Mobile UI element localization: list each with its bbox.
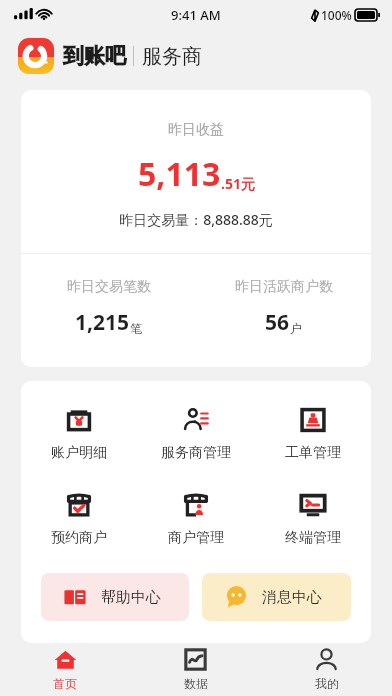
button[interactable]: 服务商管理 bbox=[137, 403, 254, 466]
staticText: 56 bbox=[265, 308, 290, 337]
staticText: 数据 bbox=[184, 676, 208, 691]
button[interactable]: 消息中心 bbox=[202, 573, 351, 621]
staticText: 昨日活跃商户数 bbox=[235, 278, 333, 296]
staticText: 账户明细 bbox=[51, 444, 107, 462]
button[interactable]: 终端管理 bbox=[254, 488, 371, 551]
button[interactable]: 工单管理 bbox=[254, 403, 371, 466]
staticText: 我的 bbox=[315, 676, 339, 691]
button[interactable]: 帮助中心 bbox=[41, 573, 189, 621]
button[interactable]: 数据 bbox=[130, 643, 261, 696]
staticText: 到账吧 bbox=[63, 43, 126, 69]
staticText: 消息中心 bbox=[262, 588, 322, 607]
staticText: 9:41 AM bbox=[171, 6, 221, 24]
staticText: 昨日交易笔数 bbox=[67, 278, 151, 296]
staticText: .51元 bbox=[221, 174, 255, 193]
staticText: 首页 bbox=[53, 676, 77, 691]
button[interactable]: 商户管理 bbox=[137, 488, 254, 551]
staticText: 昨日收益 bbox=[21, 121, 371, 139]
staticText: 笔 bbox=[130, 321, 142, 336]
staticText: 100% bbox=[321, 7, 352, 23]
staticText: 户 bbox=[290, 321, 302, 336]
staticText: 终端管理 bbox=[285, 529, 341, 547]
staticText: 工单管理 bbox=[285, 444, 341, 462]
button[interactable]: 首页 bbox=[0, 643, 130, 696]
staticText: 帮助中心 bbox=[101, 588, 161, 607]
staticText: 服务商 bbox=[142, 44, 202, 69]
button[interactable]: 我的 bbox=[261, 643, 392, 696]
staticText: 商户管理 bbox=[168, 529, 224, 547]
button[interactable]: 预约商户 bbox=[21, 488, 137, 551]
staticText: 服务商管理 bbox=[161, 444, 231, 462]
button[interactable]: 账户明细 bbox=[21, 403, 137, 466]
staticText: 预约商户 bbox=[51, 529, 107, 547]
staticText: 1,215 bbox=[75, 308, 130, 337]
staticText: 5,113 bbox=[138, 152, 221, 196]
staticText: 昨日交易量：8,888.88元 bbox=[21, 210, 371, 229]
